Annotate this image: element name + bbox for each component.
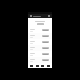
button[interactable]: Home <box>29 63 34 68</box>
button[interactable]: Action <box>42 29 49 31</box>
button[interactable]: Action <box>42 47 49 49</box>
button[interactable]: Action <box>42 35 49 37</box>
button[interactable]: Action <box>28 45 52 51</box>
button[interactable]: Action <box>42 59 49 61</box>
button[interactable]: Action <box>28 39 52 45</box>
button[interactable] <box>37 23 44 25</box>
button[interactable]: Action <box>28 57 52 63</box>
button[interactable]: Action <box>28 33 52 39</box>
button[interactable]: Profile <box>46 63 51 68</box>
button[interactable]: Library <box>40 63 45 68</box>
button[interactable]: Search <box>35 63 40 68</box>
button[interactable]: Action <box>42 53 49 55</box>
button[interactable]: Action <box>28 27 52 33</box>
button[interactable]: Action <box>42 41 49 43</box>
button[interactable]: Action <box>28 51 52 57</box>
button[interactable]: Navigate up <box>28 14 52 18</box>
